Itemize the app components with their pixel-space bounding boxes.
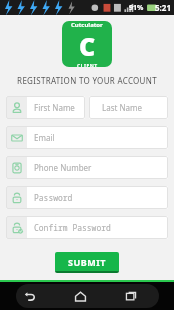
button[interactable]: SUBMIT [55,252,119,273]
button[interactable]: Back [14,282,44,310]
staticText: 5:21 [155,2,171,13]
button[interactable]: Recents [116,282,146,310]
staticText: SUBMIT [68,256,106,268]
staticText: Password [34,192,73,203]
button[interactable]: Name [6,96,85,119]
staticText: 91% [129,3,144,13]
staticText: Confirm Password [34,222,111,233]
staticText: Phone Number [34,162,92,173]
button[interactable]: Phone number [6,156,168,179]
other: Confirm password [11,222,23,234]
staticText: REGISTRATION TO YOUR ACCOUNT [0,75,174,86]
other: Password [11,192,23,204]
staticText: First Name [34,102,75,113]
other: Name [11,102,23,114]
button[interactable]: Confirm password [6,216,168,239]
other: Phone number [11,162,23,174]
staticText: CLIENT [77,63,98,67]
button[interactable]: Cutculator [62,21,112,67]
button[interactable]: Home [65,282,95,310]
staticText: Cutculator [71,21,103,29]
button[interactable]: Last Name [89,96,168,119]
button[interactable]: Email [6,126,168,149]
button[interactable]: Password [6,186,168,209]
staticText: Email [34,132,55,143]
staticText: Last Name [102,102,143,113]
staticText: C [79,29,96,63]
other: Email [11,132,23,144]
